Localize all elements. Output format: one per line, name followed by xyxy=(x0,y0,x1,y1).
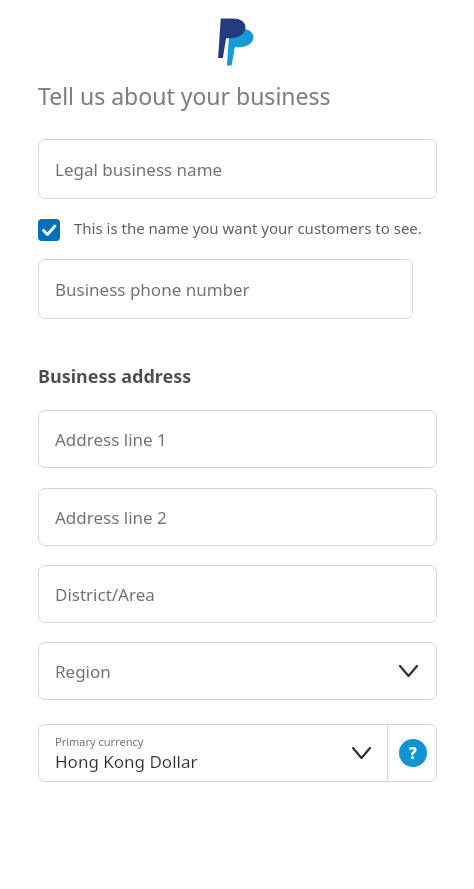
button[interactable]: Address line 2 xyxy=(38,488,437,546)
staticText: District/Area xyxy=(55,583,155,606)
button[interactable]: Region xyxy=(38,642,437,700)
staticText: Business phone number xyxy=(55,278,250,301)
staticText: ? xyxy=(409,742,417,764)
staticText: Primary currency xyxy=(55,734,144,749)
staticText: Hong Kong Dollar xyxy=(55,750,198,773)
button[interactable]: Business phone number xyxy=(38,259,413,319)
staticText: Address line 1 xyxy=(55,428,167,451)
button[interactable]: Legal business name xyxy=(38,139,437,199)
button[interactable]: Help about primary currency xyxy=(399,739,427,767)
button[interactable]: District/Area xyxy=(38,565,437,623)
staticText: This is the name you want your customers… xyxy=(74,218,422,238)
other: Open dropdown xyxy=(400,666,417,676)
button[interactable]: This is the name you want your customers… xyxy=(38,218,422,241)
button[interactable]: Primary currency xyxy=(38,724,437,782)
staticText: Region xyxy=(55,660,111,683)
staticText: Legal business name xyxy=(55,158,223,181)
staticText: Business address xyxy=(38,364,192,389)
staticText: Tell us about your business xyxy=(38,80,331,111)
button[interactable]: Address line 1 xyxy=(38,410,437,468)
staticText: Address line 2 xyxy=(55,506,167,529)
